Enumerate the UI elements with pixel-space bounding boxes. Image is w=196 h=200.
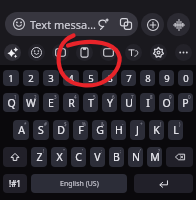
- staticText: 9: [164, 72, 170, 85]
- staticText: D: [57, 123, 65, 137]
- button[interactable]: Voice input: [167, 13, 190, 36]
- button[interactable]: Add: [141, 13, 164, 36]
- button[interactable]: N: [128, 147, 143, 167]
- staticText: !: [43, 148, 45, 154]
- staticText: 6: [107, 72, 113, 85]
- staticText: 0: [183, 72, 189, 85]
- button[interactable]: G: [92, 120, 107, 140]
- button[interactable]: I: [140, 93, 155, 112]
- button[interactable]: 0: [178, 70, 193, 86]
- button[interactable]: X: [51, 147, 67, 167]
- button[interactable]: 4: [63, 70, 79, 86]
- button[interactable]: S: [33, 120, 49, 140]
- staticText: 5: [88, 72, 94, 85]
- staticText: W: [26, 96, 36, 110]
- button[interactable]: Translate: [121, 41, 146, 63]
- staticText: /: [139, 148, 141, 154]
- button[interactable]: 5: [83, 70, 98, 86]
- button[interactable]: L: [168, 120, 183, 140]
- button[interactable]: D: [53, 120, 69, 140]
- staticText: J: [136, 123, 139, 137]
- staticText: S: [38, 123, 44, 137]
- staticText: #: [44, 121, 47, 127]
- button[interactable]: F: [73, 120, 88, 140]
- button[interactable]: B: [109, 147, 124, 167]
- staticText: :: [101, 148, 103, 154]
- staticText: *: [24, 121, 27, 127]
- staticText: V: [94, 150, 101, 164]
- staticText: A: [18, 123, 25, 137]
- button[interactable]: 6: [102, 70, 117, 86]
- button[interactable]: More options: [171, 41, 196, 63]
- staticText: 7: [126, 72, 132, 85]
- staticText: ;: [120, 148, 122, 154]
- button[interactable]: Emoji: [24, 41, 48, 63]
- button[interactable]: Q: [3, 93, 19, 112]
- button[interactable]: E: [43, 93, 59, 112]
- staticText: G: [96, 123, 104, 137]
- staticText: 7: [131, 94, 134, 100]
- staticText: N: [132, 150, 140, 164]
- button[interactable]: Y: [102, 93, 117, 112]
- button[interactable]: 7: [121, 70, 136, 86]
- button[interactable]: U: [121, 93, 136, 112]
- button[interactable]: 3: [43, 70, 59, 86]
- staticText: 0: [188, 94, 191, 100]
- button[interactable]: Magic compose: [97, 18, 109, 30]
- staticText: U: [125, 96, 133, 110]
- staticText: ?: [158, 148, 160, 154]
- button[interactable]: P: [178, 93, 193, 112]
- button[interactable]: C: [71, 147, 86, 167]
- staticText: Q: [7, 96, 16, 110]
- staticText: L: [173, 123, 179, 137]
- button[interactable]: Backspace: [166, 147, 193, 167]
- button[interactable]: English (US): [31, 174, 127, 193]
- staticText: 2: [34, 94, 37, 100]
- button[interactable]: Emoji: [13, 18, 25, 30]
- staticText: X: [56, 150, 63, 164]
- button[interactable]: K: [149, 120, 164, 140]
- button[interactable]: 1: [3, 70, 19, 86]
- staticText: ): [179, 121, 181, 127]
- button[interactable]: GIF: [48, 41, 72, 63]
- staticText: H: [115, 123, 123, 137]
- button[interactable]: O: [159, 93, 174, 112]
- button[interactable]: Gallery: [120, 18, 132, 30]
- button[interactable]: Z: [31, 147, 47, 167]
- button[interactable]: Shift: [3, 147, 27, 167]
- staticText: 2: [28, 72, 34, 85]
- staticText: ': [82, 148, 84, 154]
- button[interactable]: Text editing: [96, 41, 121, 63]
- staticText: +: [140, 121, 143, 127]
- button[interactable]: 2: [23, 70, 39, 86]
- staticText: 4: [74, 94, 77, 100]
- button[interactable]: Clipboard: [72, 41, 96, 63]
- button[interactable]: !#1: [3, 174, 27, 193]
- button[interactable]: A: [13, 120, 29, 140]
- button[interactable]: M: [147, 147, 162, 167]
- staticText: 8: [150, 94, 153, 100]
- button[interactable]: V: [90, 147, 105, 167]
- staticText: Text messa…: [30, 17, 96, 32]
- staticText: M: [150, 150, 160, 164]
- button[interactable]: W: [23, 93, 39, 112]
- button[interactable]: Enter: [134, 174, 193, 193]
- staticText: C: [75, 150, 82, 164]
- staticText: Y: [107, 96, 113, 110]
- staticText: $: [64, 121, 67, 127]
- button[interactable]: 9: [159, 70, 174, 86]
- button[interactable]: 8: [140, 70, 155, 86]
- button[interactable]: H: [111, 120, 126, 140]
- staticText: 6: [112, 94, 115, 100]
- button[interactable]: Gemini: [0, 41, 24, 63]
- staticText: (: [160, 121, 162, 127]
- button[interactable]: R: [63, 93, 79, 112]
- staticText: F: [78, 123, 84, 137]
- staticText: B: [113, 150, 120, 164]
- button[interactable]: Emoji: [5, 12, 138, 36]
- staticText: O: [162, 96, 171, 110]
- button[interactable]: Settings: [146, 41, 171, 63]
- button[interactable]: T: [83, 93, 98, 112]
- staticText: E: [48, 96, 54, 110]
- button[interactable]: J: [130, 120, 145, 140]
